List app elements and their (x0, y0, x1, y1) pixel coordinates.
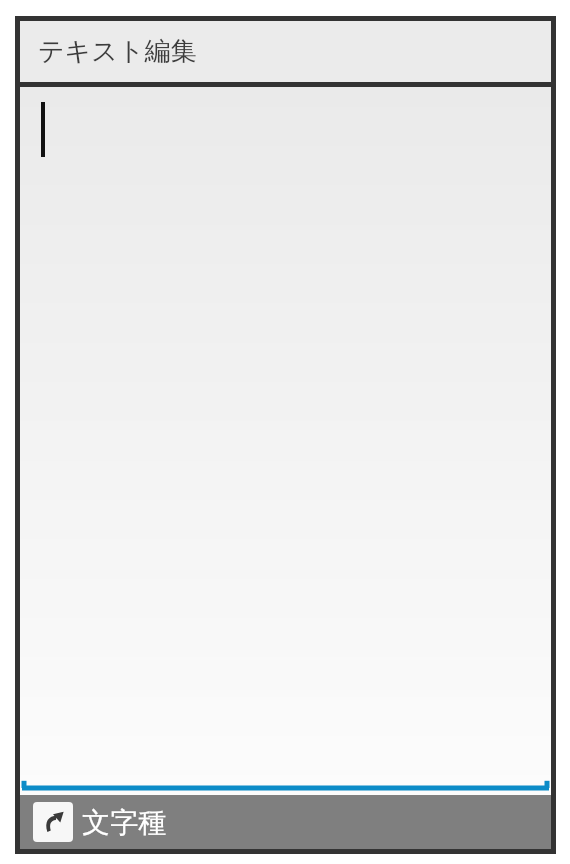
button[interactable]: テキスト編集 (20, 21, 551, 82)
staticText: テキスト編集 (38, 35, 197, 68)
staticText: 文字種 (82, 805, 166, 840)
button[interactable] (20, 87, 551, 795)
other: 文字種 (33, 802, 73, 842)
button[interactable]: 文字種 (20, 795, 551, 849)
